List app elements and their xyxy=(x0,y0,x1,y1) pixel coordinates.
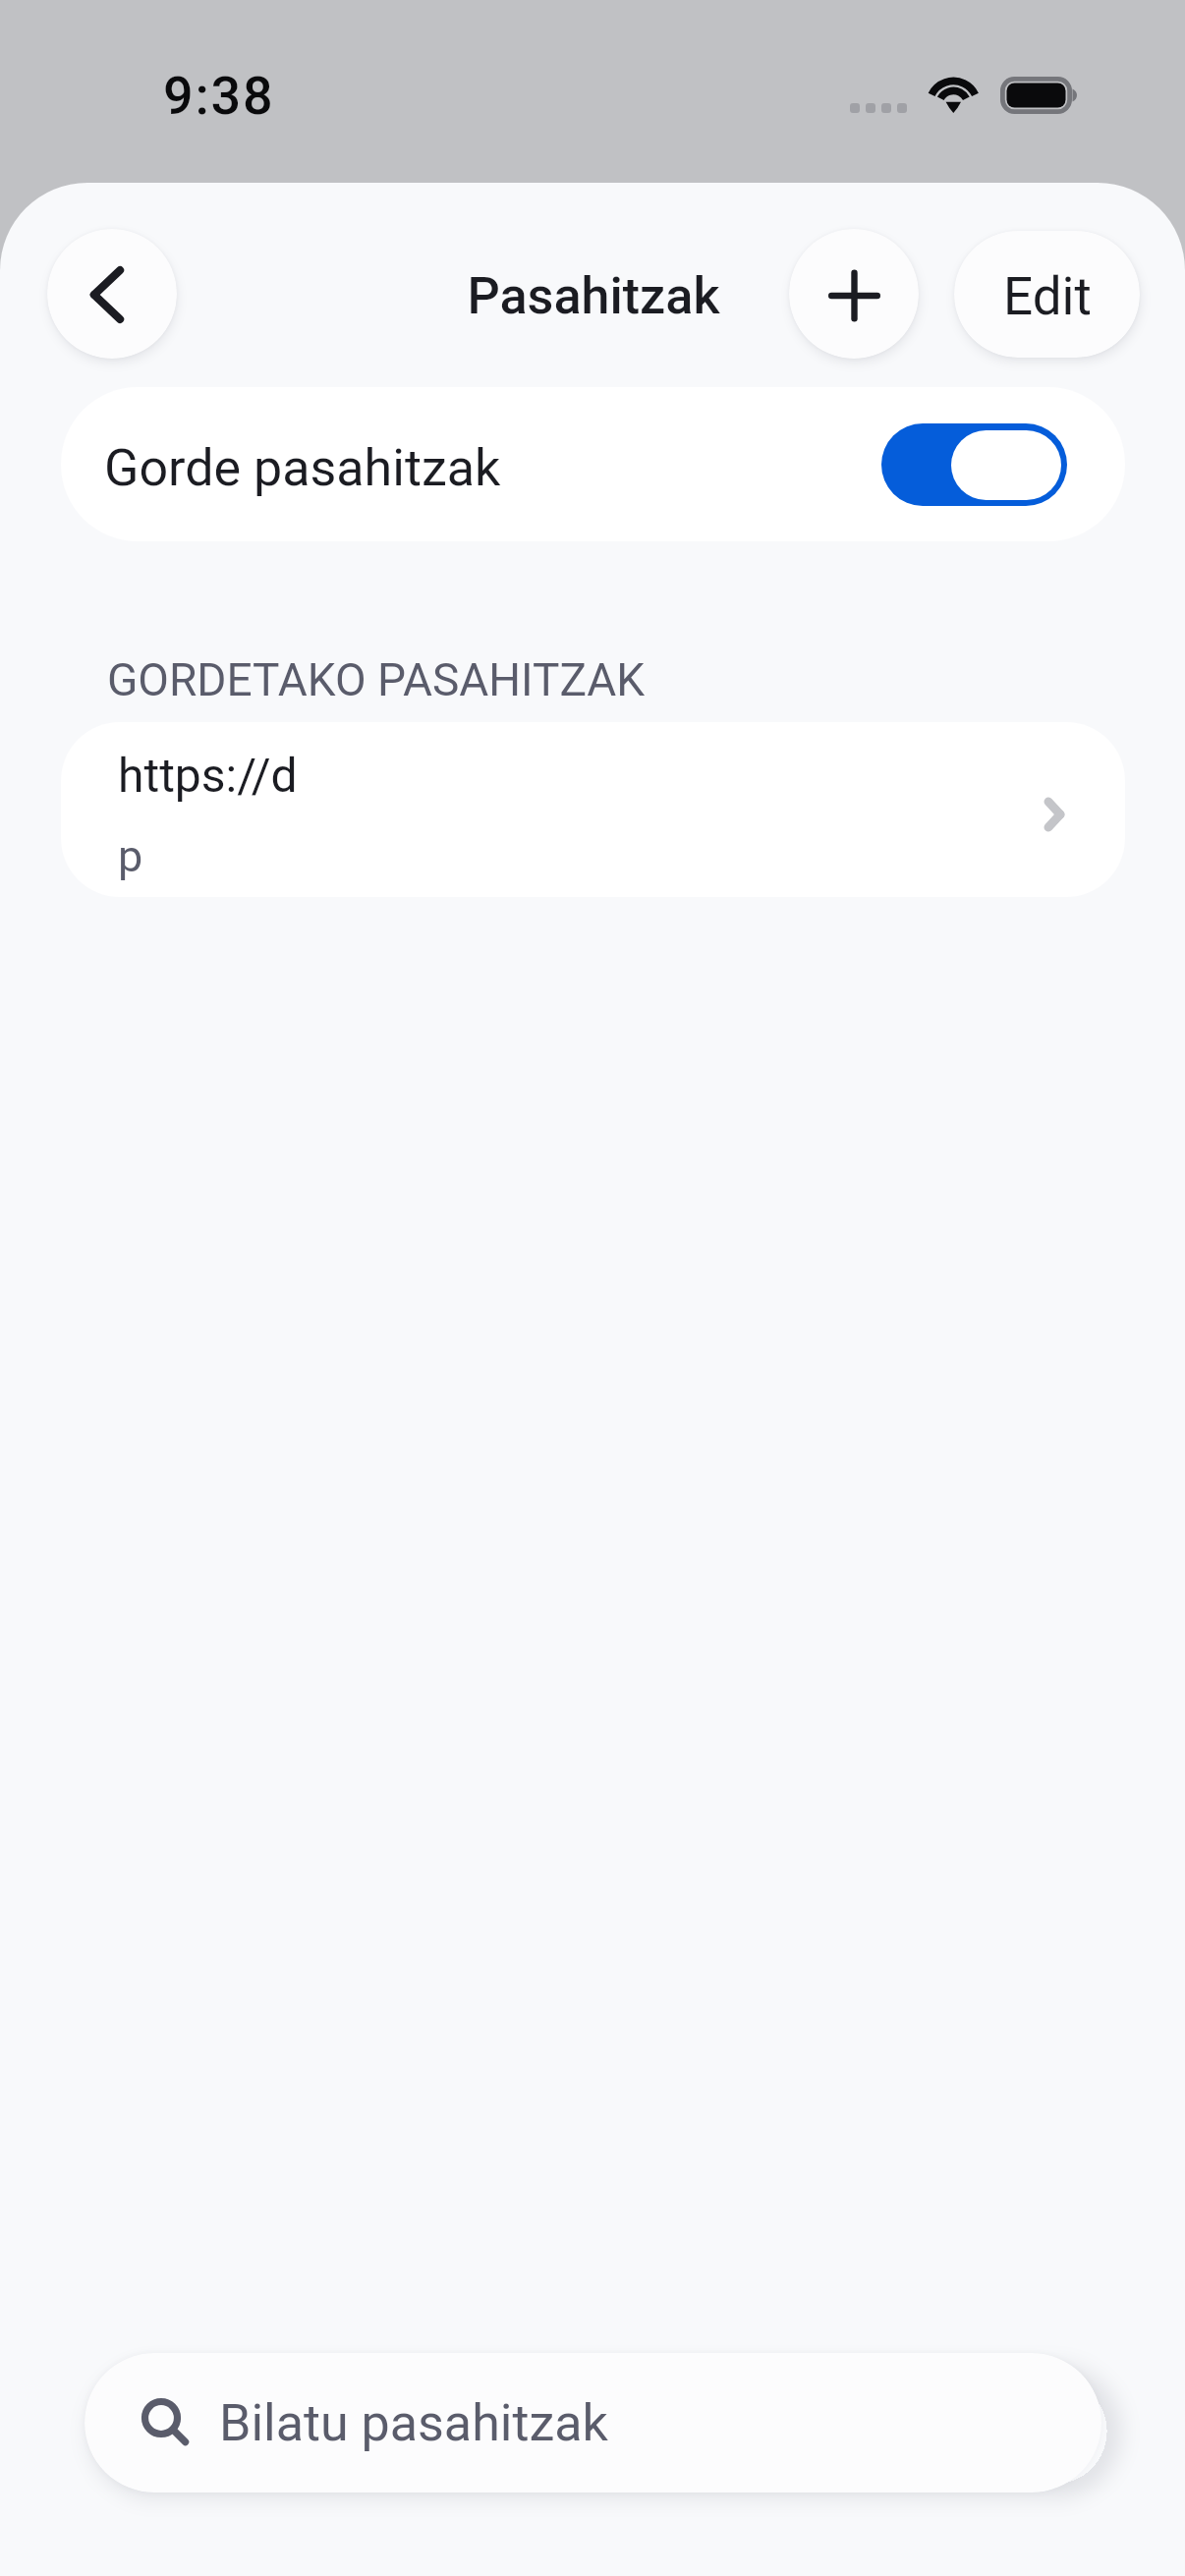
staticText: 9:38 xyxy=(163,65,275,127)
staticText: Edit xyxy=(1003,266,1092,327)
button[interactable]: Edit xyxy=(954,231,1140,358)
staticText: Bilatu pasahitzak xyxy=(219,2393,608,2453)
button[interactable]: Back xyxy=(47,229,177,359)
staticText: p xyxy=(118,830,143,882)
staticText: https://d xyxy=(118,748,298,803)
staticText: Gorde pasahitzak xyxy=(104,438,501,498)
button[interactable]: Add password xyxy=(789,229,919,359)
staticText: Pasahitzak xyxy=(467,266,720,326)
button[interactable]: https://d xyxy=(61,722,1125,897)
staticText: GORDETAKO PASAHITZAK xyxy=(107,653,646,706)
button[interactable]: Save passwords toggle xyxy=(881,423,1067,506)
button[interactable]: Bilatu pasahitzak xyxy=(85,2353,1101,2492)
button[interactable]: Gorde pasahitzak xyxy=(61,387,1125,541)
